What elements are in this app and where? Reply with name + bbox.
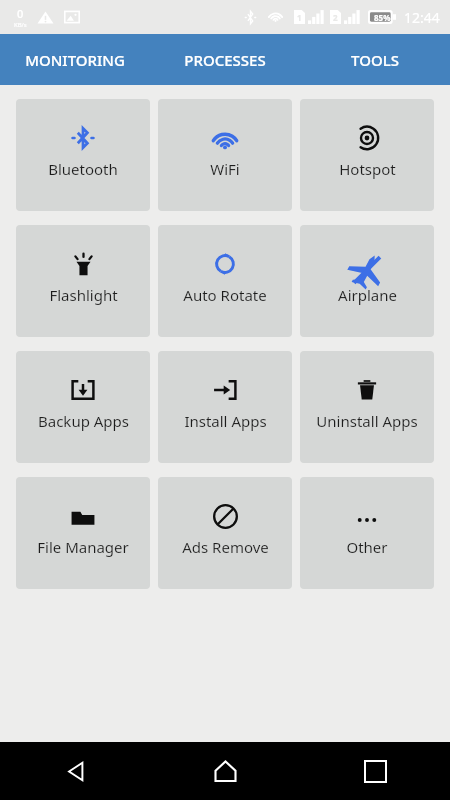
button[interactable]: Hotspot [300,99,434,211]
button[interactable]: Backup Apps [16,351,150,463]
staticText: Uninstall Apps [316,411,418,431]
button[interactable]: Other [300,477,434,589]
button[interactable]: PROCESSES [150,34,300,85]
staticText: PROCESSES [184,50,266,70]
staticText: MONITORING [25,50,125,70]
staticText: 12:44 [404,8,440,27]
button[interactable]: MONITORING [0,34,150,85]
staticText: 0 [17,6,24,21]
button[interactable]: Flashlight [16,225,150,337]
button[interactable]: Install Apps [158,351,292,463]
staticText: Bluetooth [48,159,118,179]
button[interactable]: Uninstall Apps [300,351,434,463]
button[interactable]: TOOLS [300,34,450,85]
staticText: File Manager [37,537,129,557]
button[interactable]: Back [0,742,150,800]
button[interactable]: WiFi [158,99,292,211]
staticText: Airplane [338,285,397,305]
staticText: Other [346,537,388,557]
button[interactable]: Ads Remove [158,477,292,589]
staticText: 85% [374,12,391,23]
button[interactable]: Bluetooth [16,99,150,211]
button[interactable]: Airplane [300,225,434,337]
button[interactable]: File Manager [16,477,150,589]
staticText: KB/s [14,21,27,29]
staticText: WiFi [210,159,240,179]
staticText: Backup Apps [38,411,129,431]
staticText: TOOLS [351,50,399,70]
staticText: Ads Remove [182,537,269,557]
button[interactable]: Auto Rotate [158,225,292,337]
button[interactable]: Home [150,742,300,800]
staticText: Auto Rotate [183,285,267,305]
staticText: Hotspot [339,159,396,179]
staticText: Flashlight [49,285,118,305]
staticText: 1 [297,12,302,23]
staticText: Install Apps [184,411,267,431]
button[interactable]: Recents [300,742,450,800]
staticText: 2 [333,12,338,23]
